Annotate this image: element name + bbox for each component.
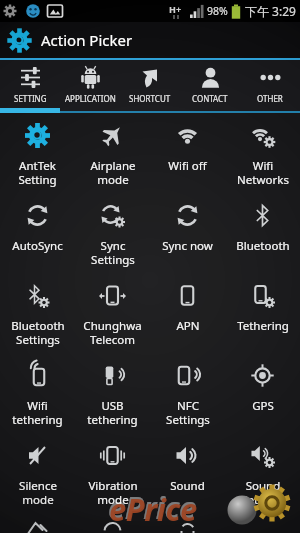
staticText: Airplane mode [90, 158, 136, 187]
staticText: APN [176, 318, 200, 334]
staticText: NFC Settings [166, 398, 210, 427]
button[interactable] [75, 513, 150, 533]
button[interactable]: Wifi Networks [225, 113, 300, 193]
button[interactable]: APN [150, 273, 225, 353]
button[interactable] [150, 513, 225, 533]
button[interactable]: CONTACT [180, 60, 240, 113]
staticText: 98% [207, 4, 228, 18]
staticText: CONTACT [192, 93, 228, 104]
button[interactable]: Bluetooth [225, 193, 300, 273]
button[interactable]: NFC Settings [150, 353, 225, 433]
button[interactable]: AntTek Setting [0, 113, 75, 193]
staticText: Silence mode [19, 478, 57, 507]
staticText: Vibration mode [88, 478, 138, 507]
button[interactable]: Tethering [225, 273, 300, 353]
staticText: H+ [169, 3, 182, 15]
button[interactable]: Sound Settings [225, 433, 300, 513]
button[interactable]: Sync now [150, 193, 225, 273]
staticText: Bluetooth [236, 238, 290, 254]
button[interactable]: Sync Settings [75, 193, 150, 273]
button[interactable] [225, 513, 300, 533]
staticText: Sound [170, 478, 205, 494]
button[interactable]: Vibration mode [75, 433, 150, 513]
staticText: Wifi off [168, 158, 207, 174]
staticText: Sound Settings [241, 478, 285, 507]
button[interactable]: AutoSync [0, 193, 75, 273]
staticText: OTHER [257, 93, 283, 104]
staticText: Tethering [237, 318, 289, 334]
staticText: ePrice [108, 486, 196, 528]
staticText: 下午 3:29 [245, 3, 296, 19]
button[interactable]: Wifi tethering [0, 353, 75, 433]
staticText: SETTING [14, 93, 47, 104]
button[interactable]: Sound [150, 433, 225, 513]
staticText: APPLICATION [65, 93, 116, 104]
staticText: Sync Settings [91, 238, 135, 267]
staticText: Wifi tethering [12, 398, 63, 427]
staticText: Sync now [162, 238, 213, 254]
staticText: Action Picker [41, 30, 133, 50]
staticText: GPS [252, 398, 274, 414]
staticText: ePrice [109, 488, 197, 530]
button[interactable]: SHORTCUT [120, 60, 180, 113]
button[interactable]: Bluetooth Settings [0, 273, 75, 353]
staticText: SHORTCUT [129, 93, 171, 104]
button[interactable]: APPLICATION [60, 60, 120, 113]
staticText: USB tethering [87, 398, 138, 427]
button[interactable]: Chunghwa Telecom [75, 273, 150, 353]
staticText: Bluetooth Settings [11, 318, 65, 347]
button[interactable]: GPS [225, 353, 300, 433]
button[interactable]: Silence mode [0, 433, 75, 513]
staticText: AntTek Setting [18, 158, 57, 187]
button[interactable] [0, 513, 75, 533]
button[interactable]: OTHER [240, 60, 300, 113]
button[interactable]: SETTING [0, 60, 60, 113]
button[interactable]: Airplane mode [75, 113, 150, 193]
button[interactable]: USB tethering [75, 353, 150, 433]
button[interactable]: Wifi off [150, 113, 225, 193]
staticText: Wifi Networks [237, 158, 289, 187]
staticText: Chunghwa Telecom [83, 318, 142, 347]
staticText: AutoSync [12, 238, 63, 254]
